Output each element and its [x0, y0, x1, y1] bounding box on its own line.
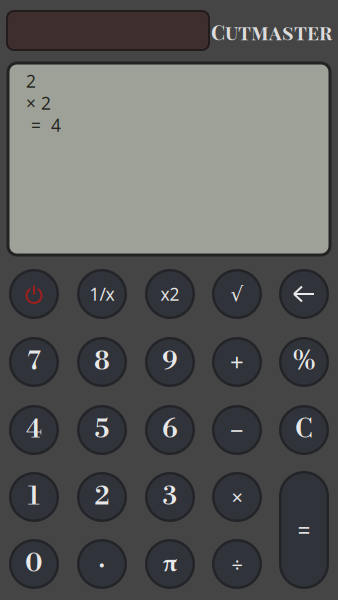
staticText: 8 — [94, 346, 110, 378]
button[interactable]: Power — [9, 269, 59, 319]
staticText: ÷ — [231, 551, 242, 577]
button[interactable]: 5 — [77, 405, 127, 455]
staticText: 6 — [162, 414, 178, 446]
staticText: = — [297, 515, 310, 545]
button[interactable]: 3 — [145, 472, 195, 522]
staticText: 2 — [94, 481, 109, 513]
staticText: 5 — [94, 414, 109, 446]
button[interactable]: + — [212, 337, 262, 387]
staticText: Cutmaster — [211, 19, 332, 45]
button[interactable]: 7 — [9, 337, 59, 387]
button[interactable]: ÷ — [212, 539, 262, 589]
staticText: 9 — [162, 346, 178, 378]
staticText: % — [292, 346, 315, 378]
staticText: 1 — [28, 481, 40, 513]
button[interactable]: C — [279, 405, 329, 455]
staticText: 4 — [26, 414, 42, 446]
staticText: π — [162, 549, 177, 579]
button[interactable]: 4 — [9, 405, 59, 455]
button[interactable]: Backspace — [279, 269, 329, 319]
button[interactable]: 6 — [145, 405, 195, 455]
staticText: x2 — [160, 282, 179, 305]
button[interactable]: % — [279, 337, 329, 387]
button[interactable]: π — [145, 539, 195, 589]
staticText: × 2 — [26, 91, 51, 114]
button[interactable]: − — [212, 405, 262, 455]
staticText: + — [230, 346, 244, 378]
button[interactable]: 1/x — [77, 269, 127, 319]
button[interactable]: 2 — [77, 472, 127, 522]
staticText: √ — [230, 283, 243, 305]
staticText: 3 — [162, 481, 177, 513]
button[interactable]: · — [77, 539, 127, 589]
staticText: × — [231, 484, 242, 510]
staticText: 2 — [26, 69, 36, 92]
button[interactable]: 1 — [9, 472, 59, 522]
button[interactable]: 9 — [145, 337, 195, 387]
button[interactable]: 0 — [9, 539, 59, 589]
staticText: 7 — [27, 346, 41, 378]
staticText: − — [230, 414, 244, 446]
button[interactable]: 8 — [77, 337, 127, 387]
button[interactable]: = — [279, 471, 329, 589]
staticText: 1/x — [89, 282, 114, 305]
button[interactable]: x2 — [145, 269, 195, 319]
staticText: C — [295, 414, 313, 446]
button[interactable]: √ — [212, 269, 262, 319]
button[interactable]: × — [212, 472, 262, 522]
staticText: · — [99, 548, 105, 580]
staticText: 0 — [25, 548, 43, 580]
staticText: = 4 — [26, 113, 61, 136]
